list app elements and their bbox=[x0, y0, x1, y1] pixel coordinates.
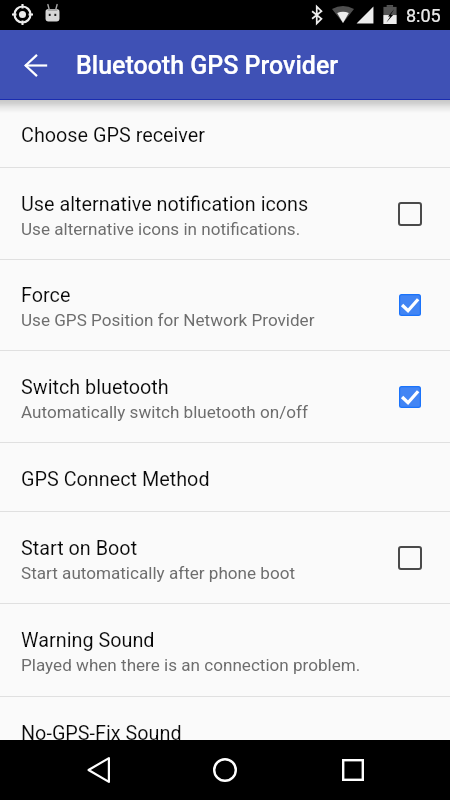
staticText: GPS Connect Method bbox=[21, 468, 210, 491]
staticText: Bluetooth GPS Provider bbox=[76, 51, 339, 80]
staticText: Use GPS Position for Network Provider bbox=[21, 310, 315, 330]
button[interactable]: No-GPS-Fix Sound bbox=[0, 697, 450, 740]
staticText: Automatically switch bluetooth on/off bbox=[21, 402, 308, 422]
button[interactable]: Home bbox=[195, 740, 255, 800]
staticText: Start on Boot bbox=[21, 537, 138, 560]
button[interactable]: Use alternative notification icons bbox=[0, 168, 450, 259]
staticText: Force bbox=[21, 284, 71, 307]
staticText: Start automatically after phone boot bbox=[21, 563, 296, 583]
staticText: Switch bluetooth bbox=[21, 376, 169, 399]
button[interactable]: Switch bluetooth bbox=[0, 351, 450, 442]
button[interactable]: Force bbox=[0, 260, 450, 350]
button[interactable]: Back bbox=[68, 740, 128, 800]
button[interactable]: Recents bbox=[323, 740, 383, 800]
staticText: Warning Sound bbox=[21, 629, 155, 652]
button[interactable]: Warning Sound bbox=[0, 604, 450, 696]
staticText: Use alternative notification icons bbox=[21, 193, 309, 216]
button[interactable]: Navigate up bbox=[0, 30, 58, 100]
button[interactable]: Start on Boot bbox=[0, 512, 450, 603]
staticText: Played when there is an connection probl… bbox=[21, 655, 361, 675]
staticText: No-GPS-Fix Sound bbox=[21, 722, 182, 740]
button[interactable]: GPS Connect Method bbox=[0, 443, 450, 511]
staticText: 8:05 bbox=[406, 5, 441, 26]
staticText: Choose GPS receiver bbox=[21, 124, 206, 147]
button[interactable]: Choose GPS receiver bbox=[0, 100, 450, 167]
staticText: Use alternative icons in notifications. bbox=[21, 219, 301, 239]
